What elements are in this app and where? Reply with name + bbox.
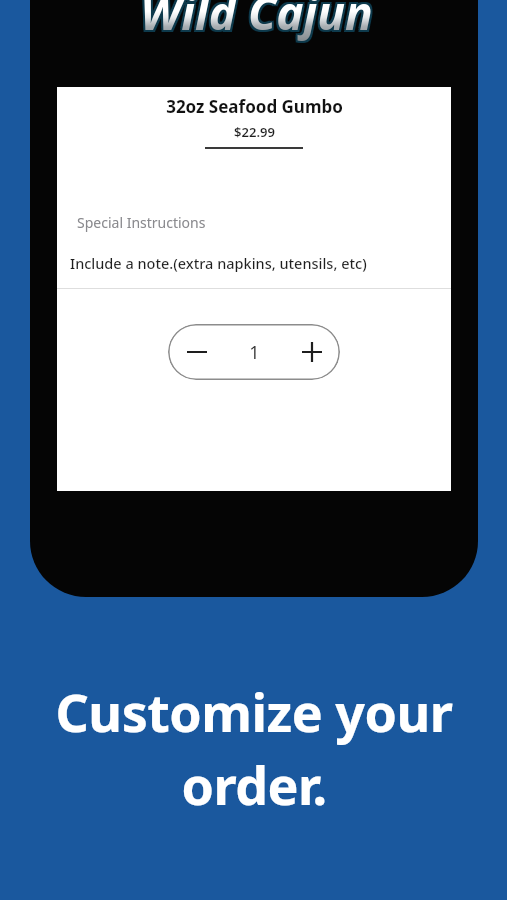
staticText: 32oz Seafood Gumbo: [166, 95, 343, 118]
staticText: Special Instructions: [77, 213, 206, 232]
staticText: Wild Cajun: [142, 0, 375, 44]
staticText: Wild Cajun: [138, 0, 371, 42]
staticText: Include a note.(extra napkins, utensils,…: [70, 253, 367, 273]
staticText: 1: [249, 340, 260, 365]
button[interactable]: Decrease quantity: [168, 324, 340, 380]
staticText: Wild Cajun: [138, 0, 371, 44]
staticText: Customize your: [55, 676, 453, 747]
staticText: Wild Cajun: [140, 0, 373, 44]
button[interactable]: Decrease quantity: [168, 324, 226, 380]
staticText: Wild Cajun: [140, 0, 373, 46]
button[interactable]: Increase quantity: [283, 324, 340, 380]
staticText: order.: [181, 749, 327, 820]
staticText: Wild Cajun: [142, 0, 375, 46]
staticText: $22.99: [234, 123, 275, 141]
staticText: Wild Cajun: [142, 0, 375, 42]
button[interactable]: Include a note.(extra napkins, utensils,…: [69, 253, 368, 273]
staticText: Wild Cajun: [138, 0, 371, 46]
staticText: Wild Cajun: [140, 0, 373, 42]
